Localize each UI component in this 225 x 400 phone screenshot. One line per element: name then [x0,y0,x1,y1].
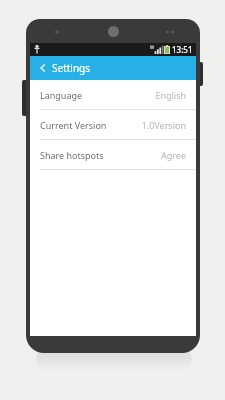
staticText: Settings [52,61,91,75]
button[interactable]: Share hotspots [30,140,196,170]
staticText: 13:51 [172,44,193,55]
button[interactable]: Back [34,59,52,77]
button[interactable]: Language [30,80,196,110]
staticText: 1.0Version [141,119,186,131]
staticText: Share hotspots [40,149,104,161]
staticText: Agree [161,149,186,161]
button[interactable]: Current Version [30,110,196,140]
staticText: English [155,89,186,101]
staticText: Current Version [40,119,107,131]
staticText: Language [40,89,83,101]
